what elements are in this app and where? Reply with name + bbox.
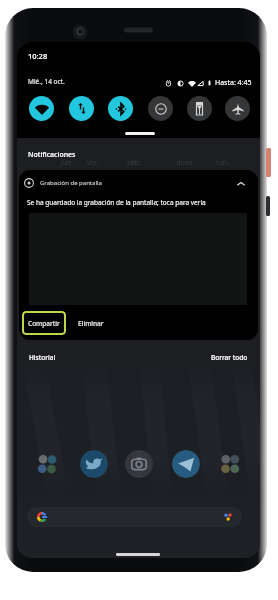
staticText: Hasta: 4:45 (215, 78, 252, 88)
button[interactable]: Carpeta de aplicaciones (33, 450, 61, 478)
staticText: Eliminar (78, 319, 104, 328)
button[interactable]: Historial (26, 350, 59, 365)
staticText: Borrar todo (211, 353, 248, 362)
button[interactable]: Telegram (172, 450, 200, 478)
button[interactable]: Borrar todo (208, 350, 251, 365)
button[interactable]: Cámara (125, 450, 153, 478)
button[interactable]: Wi-Fi (29, 96, 54, 121)
button[interactable]: No molestar (148, 96, 173, 121)
button[interactable]: Contraer notificación (235, 178, 247, 190)
button[interactable]: Datos móviles (69, 96, 94, 121)
button[interactable]: Buscar con Google (27, 507, 242, 527)
staticText: lun. (216, 157, 230, 167)
staticText: Grabación de pantalla (40, 179, 102, 187)
button[interactable]: Eliminar (72, 311, 110, 335)
staticText: Historial (29, 353, 56, 362)
staticText: vie. (87, 157, 99, 167)
button[interactable]: Grabación de pantalla (19, 170, 258, 340)
staticText: Mié., 14 oct. (28, 77, 65, 86)
button[interactable]: Modo avión (225, 96, 250, 121)
staticText: Compartir (28, 319, 60, 328)
button[interactable]: Compartir (22, 311, 66, 335)
staticText: Se ha guardado la grabación de la pantal… (27, 198, 206, 207)
staticText: jue. (61, 157, 74, 167)
staticText: Notificaciones (28, 150, 76, 160)
button[interactable]: Bluetooth (108, 96, 133, 121)
button[interactable]: Carpeta de Google (216, 450, 244, 478)
button[interactable]: Linterna (187, 96, 212, 121)
staticText: sáb. (127, 157, 142, 167)
button[interactable]: Twitter (80, 450, 108, 478)
staticText: 10:28 (28, 51, 48, 61)
staticText: dom. (176, 157, 195, 167)
